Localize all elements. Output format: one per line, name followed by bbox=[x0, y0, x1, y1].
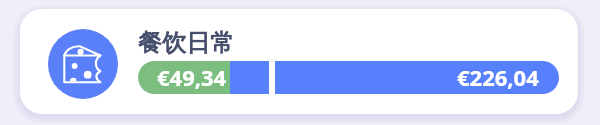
staticText: 餐饮日常 bbox=[138, 28, 234, 58]
other: Food category bbox=[48, 29, 118, 99]
button[interactable]: Food category bbox=[20, 9, 578, 114]
staticText: €226,04 bbox=[457, 62, 539, 92]
staticText: €49,34 bbox=[157, 62, 227, 92]
